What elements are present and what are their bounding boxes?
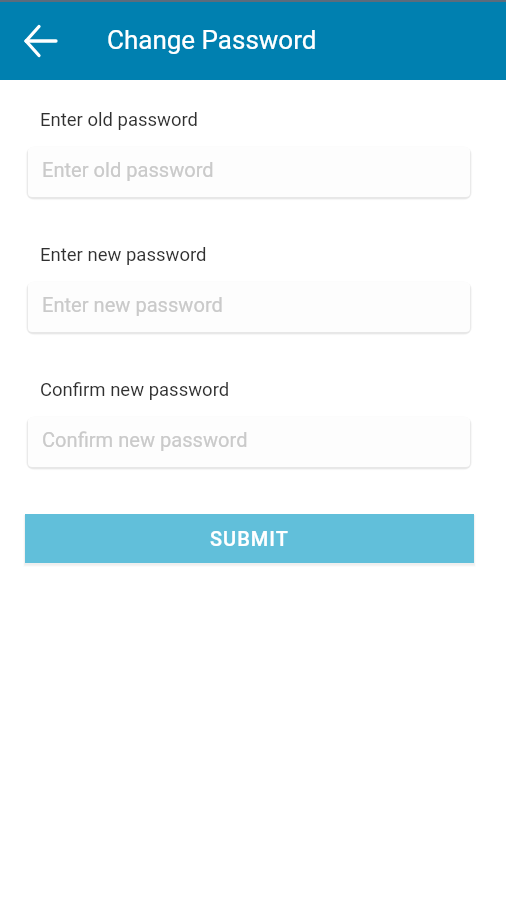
button[interactable]: Enter new password xyxy=(28,282,470,332)
staticText: Enter new password xyxy=(40,244,207,266)
staticText: Enter old password xyxy=(40,109,199,131)
staticText: Confirm new password xyxy=(40,379,230,401)
button[interactable]: Enter old password xyxy=(28,147,470,197)
staticText: Enter old password xyxy=(42,158,214,182)
staticText: SUBMIT xyxy=(210,527,289,550)
button[interactable]: SUBMIT xyxy=(25,514,474,563)
staticText: Confirm new password xyxy=(42,428,248,452)
button[interactable]: Confirm new password xyxy=(28,417,470,467)
staticText: Enter new password xyxy=(42,293,223,317)
button[interactable]: Back xyxy=(17,17,65,65)
staticText: Change Password xyxy=(107,25,317,55)
